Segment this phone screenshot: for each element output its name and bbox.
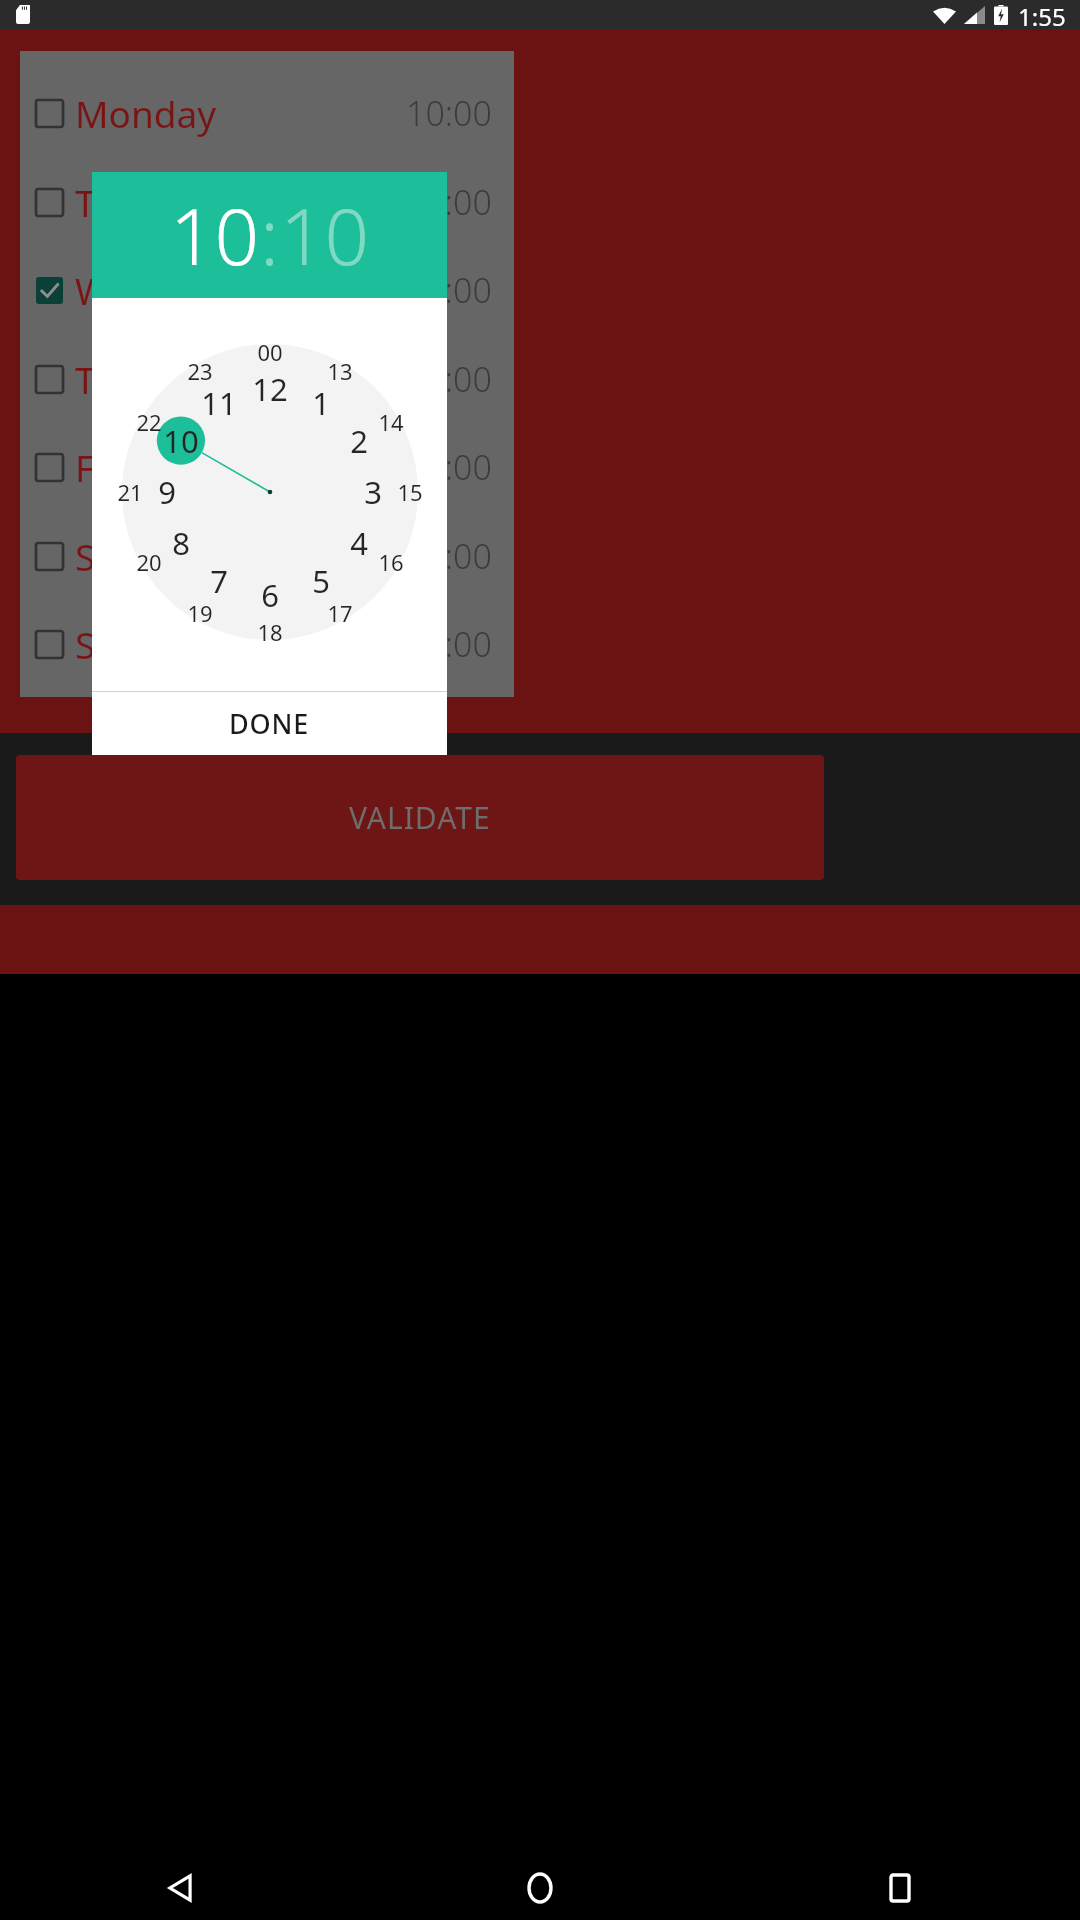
staticText: VALIDATE	[349, 797, 491, 838]
button[interactable]: 3	[350, 469, 396, 515]
staticText: Sunday	[75, 619, 204, 669]
button[interactable]: 10	[170, 182, 260, 288]
button[interactable]: 12	[247, 366, 293, 412]
staticText: 10	[170, 182, 260, 288]
staticText: 10:00	[406, 267, 492, 313]
staticText: 10	[280, 182, 370, 288]
staticText: 4	[350, 522, 368, 564]
button[interactable]: Wednesday	[20, 258, 514, 322]
staticText: 1	[312, 382, 330, 424]
button[interactable]: 5	[298, 558, 344, 604]
button[interactable]: Sunday	[20, 612, 514, 676]
button[interactable]: 9	[144, 469, 190, 515]
staticText: 18	[257, 617, 283, 647]
button[interactable]: Monday	[20, 81, 514, 145]
staticText: Friday	[75, 442, 182, 492]
button[interactable]: 15	[387, 469, 433, 515]
button[interactable]: 1	[298, 380, 344, 426]
button[interactable]: 20	[126, 539, 172, 585]
button[interactable]: 00	[247, 329, 293, 375]
button[interactable]: 6	[247, 572, 293, 618]
button[interactable]: 7	[196, 558, 242, 604]
staticText: DONE	[229, 705, 310, 742]
staticText: :	[260, 182, 280, 288]
staticText: 20	[136, 547, 162, 577]
button[interactable]: 10	[280, 182, 370, 288]
staticText: 5	[312, 560, 330, 602]
button[interactable]: VALIDATE	[16, 755, 824, 880]
button[interactable]: 18	[247, 609, 293, 655]
staticText: Thursday	[75, 354, 237, 404]
button[interactable]: Thursday	[20, 347, 514, 411]
staticText: 00	[257, 337, 283, 367]
staticText: 10:00	[406, 444, 492, 490]
staticText: 1:55	[1018, 0, 1066, 29]
button[interactable]: 8	[158, 520, 204, 566]
button[interactable]: Home	[360, 1856, 720, 1920]
button[interactable]: Tuesday	[20, 170, 514, 234]
staticText: 10:00	[406, 533, 492, 579]
button[interactable]: 2	[336, 418, 382, 464]
staticText: 10:00	[406, 356, 492, 402]
staticText: Monday	[75, 88, 217, 138]
staticText: 10:00	[406, 621, 492, 667]
button[interactable]: Saturday	[20, 524, 514, 588]
staticText: Wednesday	[75, 265, 277, 315]
staticText: 7	[210, 560, 228, 602]
button[interactable]: 13	[317, 348, 363, 394]
button[interactable]: 19	[177, 590, 223, 636]
button[interactable]: 22	[126, 399, 172, 445]
button[interactable]: Back	[0, 1856, 360, 1920]
button[interactable]: 16	[368, 539, 414, 585]
staticText: 13	[327, 356, 353, 386]
staticText: 19	[187, 598, 213, 628]
staticText: 22	[136, 407, 162, 437]
staticText: 16	[378, 547, 404, 577]
staticText: 14	[378, 407, 404, 437]
staticText: 23	[187, 356, 213, 386]
button[interactable]: 11	[196, 380, 242, 426]
staticText: 21	[117, 477, 143, 507]
button[interactable]: Recent apps	[720, 1856, 1080, 1920]
staticText: 11	[201, 382, 237, 424]
staticText: 3	[364, 471, 382, 513]
staticText: 2	[350, 420, 368, 462]
staticText: 12	[252, 368, 288, 410]
button[interactable]: 14	[368, 399, 414, 445]
button[interactable]: 17	[317, 590, 363, 636]
staticText: 6	[261, 574, 279, 616]
staticText: 10:00	[406, 90, 492, 136]
staticText: 10:00	[406, 179, 492, 225]
staticText: 9	[158, 471, 176, 513]
staticText: 17	[327, 598, 353, 628]
staticText: Saturday	[75, 531, 230, 581]
staticText: 10	[163, 420, 199, 462]
button[interactable]: 21	[107, 469, 153, 515]
staticText: 8	[172, 522, 190, 564]
button[interactable]: 10	[158, 418, 204, 464]
button[interactable]: 23	[177, 348, 223, 394]
button[interactable]: DONE	[92, 692, 447, 755]
staticText: 15	[397, 477, 423, 507]
button[interactable]: Friday	[20, 435, 514, 499]
button[interactable]: 4	[336, 520, 382, 566]
staticText: Tuesday	[75, 177, 218, 227]
